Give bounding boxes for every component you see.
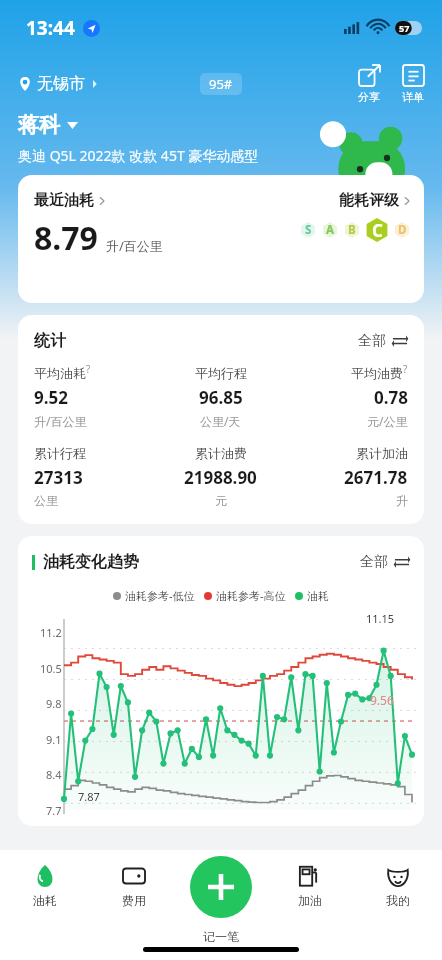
button[interactable]: 平均行程 [158,365,283,429]
staticText: 9.8 [46,696,62,711]
staticText: 8.79 [34,216,98,260]
button[interactable]: 全部 [358,332,408,350]
staticText: 累计行程 [34,445,86,461]
staticText: 13:44 [26,15,75,41]
staticText: 21988.90 [184,466,257,489]
staticText: 费用 [122,893,146,908]
staticText: 累计油费 [195,445,247,461]
button[interactable]: 累计油费 [158,445,283,508]
button[interactable]: 蒋科 [18,112,78,138]
button[interactable]: 详单 [402,65,424,104]
staticText: 最近油耗 [34,191,94,210]
staticText: 元/公里 [367,413,408,429]
staticText: 95# [209,75,233,93]
staticText: 详单 [402,90,424,104]
staticText: 油耗 [307,589,329,603]
button[interactable]: 全部 [360,553,410,571]
staticText: 升/百公里 [34,413,87,429]
staticText: 11.2 [40,625,62,640]
staticText: 奥迪 Q5L 2022款 改款 45T 豪华动感型 [18,146,259,165]
staticText: 加油 [298,893,322,908]
button[interactable]: 最近油耗 [18,175,424,303]
staticText: 元 [215,493,227,508]
staticText: C [372,219,383,242]
staticText: 11.15 [366,611,395,626]
button[interactable]: 记一笔 添加 [190,856,252,918]
staticText: 全部 [360,553,388,571]
button[interactable]: 累计加油 [283,445,408,508]
staticText: D [398,222,407,238]
staticText: 升 [396,493,408,508]
staticText: 2671.78 [344,466,408,489]
staticText: 9.1 [46,732,62,747]
button[interactable]: 油耗 [0,850,89,922]
staticText: 累计加油 [356,445,408,461]
button[interactable]: 平均油耗 [34,365,158,429]
staticText: 27313 [34,466,83,489]
button[interactable]: 分享 [358,65,380,104]
staticText: B [348,222,356,238]
staticText: 平均油费 [351,365,403,381]
staticText: 0.78 [374,386,408,409]
staticText: 蒋科 [18,112,60,138]
button[interactable]: 能耗评级 [339,191,410,210]
staticText: A [326,222,334,238]
staticText: 分享 [358,90,380,104]
staticText: 油耗参考-高位 [216,588,286,603]
staticText: 7.7 [46,803,62,818]
staticText: 平均油耗 [34,365,86,381]
staticText: 平均行程 [195,365,247,381]
staticText: 无锡市 [37,74,85,94]
staticText: 57 [399,22,410,34]
staticText: S [305,222,312,238]
staticText: 升/百公里 [106,237,163,255]
staticText: 7.87 [78,789,100,804]
staticText: 8.4 [46,767,62,782]
staticText: 我的 [386,893,410,908]
staticText: 10.5 [40,661,62,676]
staticText: 油耗参考-低位 [125,588,195,603]
staticText: 统计 [34,331,66,351]
staticText: 公里/天 [200,413,241,429]
button[interactable]: 无锡市 [18,74,99,94]
staticText: 9.52 [34,386,68,409]
staticText: 油耗 [33,893,57,908]
button[interactable]: 我的 [354,850,442,922]
staticText: 公里 [34,493,58,508]
button[interactable]: 累计行程 [34,445,158,508]
staticText: 能耗评级 [339,191,399,210]
staticText: 油耗变化趋势 [43,552,139,572]
button[interactable]: 平均油费 [283,365,408,429]
button[interactable]: 加油 [266,850,354,922]
staticText: ? [86,362,91,376]
staticText: 记一笔 [203,929,239,944]
staticText: 96.85 [199,386,243,409]
staticText: 9.56 [370,692,394,708]
button[interactable]: 费用 [89,850,178,922]
staticText: ? [403,362,408,376]
button[interactable]: 95# [200,73,242,95]
staticText: 全部 [358,332,386,350]
